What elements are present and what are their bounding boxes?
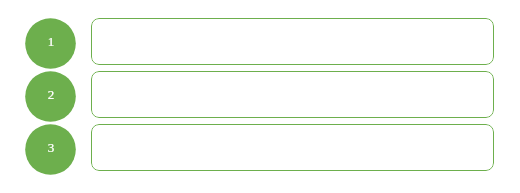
button[interactable]: Step 2 xyxy=(25,71,76,122)
button[interactable]: Field 3 xyxy=(91,124,494,171)
button[interactable]: Step 3 xyxy=(25,124,76,175)
staticText: 1 xyxy=(48,34,54,49)
staticText: 2 xyxy=(48,87,54,102)
button[interactable]: Field 1 xyxy=(91,18,494,65)
button[interactable]: Field 2 xyxy=(91,71,494,118)
button[interactable]: Step 1 xyxy=(25,18,76,69)
staticText: 3 xyxy=(48,140,54,155)
